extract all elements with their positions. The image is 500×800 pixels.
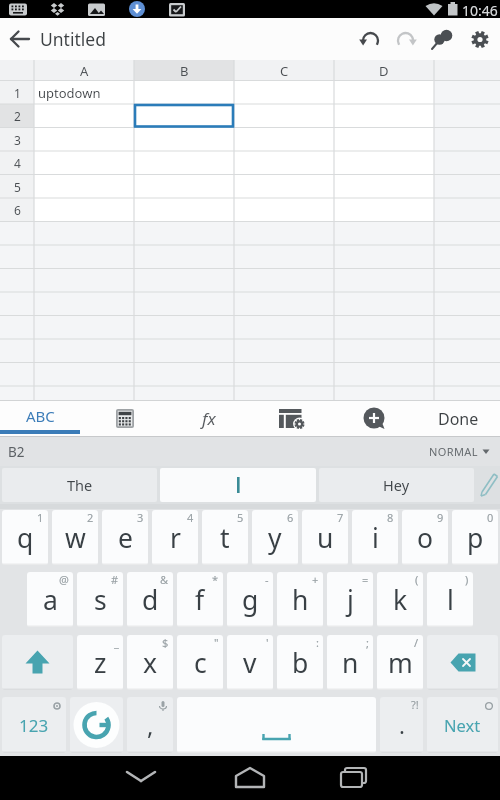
button[interactable]: w	[52, 510, 98, 565]
button[interactable]: m	[377, 635, 423, 690]
staticText: NORMAL	[429, 444, 478, 459]
button[interactable]	[2, 635, 73, 690]
staticText: n	[342, 645, 359, 681]
button[interactable]: B	[134, 60, 234, 81]
button[interactable]: ,	[127, 697, 173, 753]
button[interactable]: 6	[0, 198, 34, 222]
staticText: uptodown	[38, 84, 101, 102]
button[interactable]: i	[352, 510, 398, 565]
staticText: t	[220, 520, 230, 556]
staticText: y	[268, 520, 282, 556]
button[interactable]	[177, 697, 376, 753]
staticText: @	[59, 572, 69, 587]
staticText: m	[388, 645, 413, 681]
button[interactable]	[83, 401, 166, 436]
button[interactable]	[428, 26, 456, 54]
button[interactable]: l	[427, 572, 473, 627]
staticText: o	[417, 520, 434, 556]
staticText: '	[266, 635, 269, 650]
button[interactable]	[227, 760, 273, 796]
button[interactable]: v	[227, 635, 273, 690]
button[interactable]: r	[152, 510, 198, 565]
button[interactable]: 3	[0, 128, 34, 152]
button[interactable]	[118, 760, 164, 796]
staticText: z	[94, 645, 107, 681]
button[interactable]: Done	[416, 401, 500, 436]
button[interactable]: The	[2, 468, 157, 502]
button[interactable]: c	[177, 635, 223, 690]
button[interactable]: z	[77, 635, 123, 690]
staticText: (	[415, 572, 419, 587]
button[interactable]: fx	[167, 401, 250, 436]
button[interactable]	[356, 26, 384, 54]
staticText: h	[292, 582, 309, 618]
button[interactable]	[466, 26, 494, 54]
staticText: $	[162, 635, 169, 650]
staticText: 2	[14, 108, 21, 124]
button[interactable]: a	[27, 572, 73, 627]
button[interactable]: 5	[0, 175, 34, 199]
staticText: fx	[202, 407, 216, 430]
button[interactable]: n	[327, 635, 373, 690]
button[interactable]: f	[177, 572, 223, 627]
button[interactable]: x	[127, 635, 173, 690]
button[interactable]	[392, 26, 420, 54]
button[interactable]	[476, 470, 500, 500]
button[interactable]	[332, 760, 378, 796]
button[interactable]: C	[234, 60, 334, 81]
button[interactable]: Hey	[319, 468, 474, 502]
button[interactable]	[427, 635, 498, 690]
button[interactable]: j	[327, 572, 373, 627]
staticText: d	[142, 582, 159, 618]
staticText: r	[170, 520, 181, 556]
staticText: B2	[8, 443, 25, 461]
button[interactable]	[160, 468, 316, 502]
button[interactable]: q	[2, 510, 48, 565]
button[interactable]: ABC	[0, 400, 80, 431]
staticText: j	[347, 582, 354, 618]
button[interactable]: A	[34, 60, 134, 81]
button[interactable]: y	[252, 510, 298, 565]
button[interactable]: e	[102, 510, 148, 565]
staticText: b	[292, 645, 309, 681]
button[interactable]: p	[452, 510, 498, 565]
staticText: &	[160, 572, 169, 587]
button[interactable]: D	[334, 60, 434, 81]
staticText: c	[194, 645, 207, 681]
button[interactable]: u	[302, 510, 348, 565]
staticText: p	[467, 520, 484, 556]
button[interactable]	[333, 401, 416, 436]
button[interactable]: .	[380, 697, 423, 753]
staticText: k	[393, 582, 408, 618]
button[interactable]: d	[127, 572, 173, 627]
staticText: C	[280, 62, 289, 80]
button[interactable]: k	[377, 572, 423, 627]
staticText: g	[242, 582, 259, 618]
button[interactable]: Untitled	[40, 27, 160, 51]
staticText: *	[212, 572, 219, 587]
staticText: 5	[237, 510, 244, 525]
button[interactable]	[250, 401, 333, 436]
button[interactable]: 1	[0, 81, 34, 105]
button[interactable]: s	[77, 572, 123, 627]
button[interactable]: 4	[0, 151, 34, 175]
button[interactable]	[70, 697, 123, 753]
button[interactable]: o	[402, 510, 448, 565]
button[interactable]: 2	[0, 104, 34, 128]
staticText: )	[465, 572, 469, 587]
button[interactable]: g	[227, 572, 273, 627]
button[interactable]	[427, 697, 498, 753]
staticText: 8	[387, 510, 394, 525]
staticText: 2	[87, 510, 94, 525]
button[interactable]: NORMAL	[400, 437, 478, 466]
button[interactable]	[2, 697, 66, 753]
button[interactable]	[6, 26, 34, 52]
staticText: ABC	[26, 406, 55, 426]
staticText: 5	[14, 179, 21, 195]
button[interactable]: h	[277, 572, 323, 627]
staticText: e	[118, 520, 133, 556]
button[interactable]: t	[202, 510, 248, 565]
staticText: f	[195, 582, 205, 618]
staticText: 3	[137, 510, 144, 525]
button[interactable]: b	[277, 635, 323, 690]
